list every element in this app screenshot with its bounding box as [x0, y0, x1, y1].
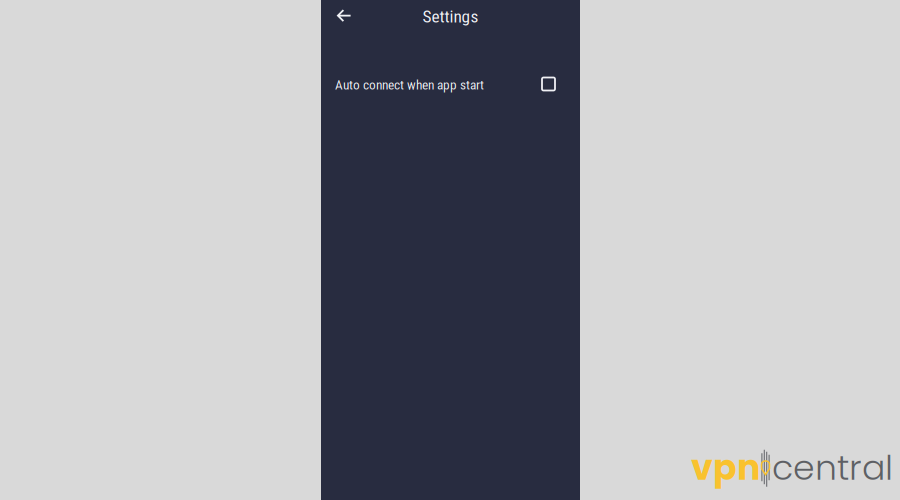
button[interactable]: Auto connect when app start	[321, 68, 580, 102]
button[interactable]: Back	[321, 0, 365, 30]
staticText: Settings	[422, 6, 478, 27]
staticText: vpn	[691, 443, 760, 492]
staticText: Auto connect when app start	[335, 77, 484, 93]
staticText: central	[772, 443, 893, 492]
